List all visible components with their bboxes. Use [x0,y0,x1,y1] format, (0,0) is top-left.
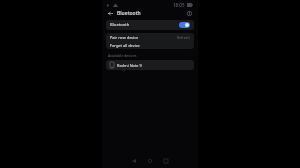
button[interactable]: Recent apps [160,155,172,167]
button[interactable]: Back [107,10,114,17]
button[interactable]: Bluetooth [106,20,194,30]
button[interactable]: Help [186,10,193,17]
staticText: Bluetooth [117,10,141,17]
button[interactable]: Back [128,155,140,167]
staticText: Redmi Note 9 [117,63,142,68]
staticText: Bluetooth [110,22,130,28]
staticText: Available devices [108,53,137,58]
button[interactable]: Pair new device [106,33,194,41]
staticText: Pair new device [110,35,139,40]
button[interactable]: Redmi Note 9 [106,60,194,70]
staticText: 18:05 [173,2,185,8]
staticText: Forget all device [110,43,140,48]
button[interactable]: Forget all device [106,41,194,49]
staticText: Refresh [177,35,190,40]
button[interactable]: Home [144,155,156,167]
